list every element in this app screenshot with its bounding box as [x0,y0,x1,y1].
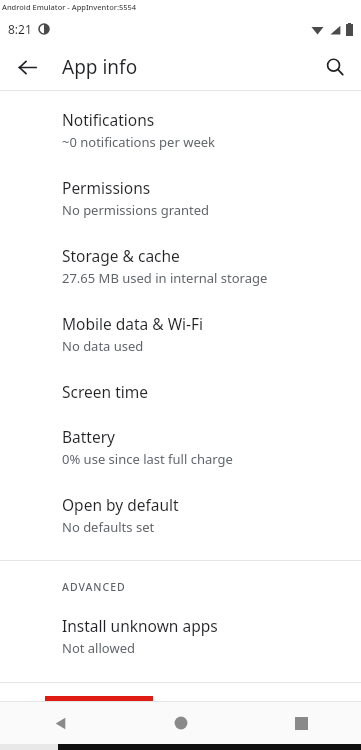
staticText: Android Emulator - AppInventor:5554 [2,2,137,12]
staticText: Install unknown apps [62,615,218,636]
button[interactable]: Notifications [0,91,361,151]
staticText: Storage & cache [62,245,180,266]
staticText: No data used [62,337,144,355]
button[interactable]: Screen time [0,355,361,402]
button[interactable]: Open by default [0,468,361,536]
button[interactable]: Back [10,50,44,84]
staticText: No permissions granted [62,201,210,219]
staticText: Screen time [62,381,148,402]
button[interactable]: Permissions [0,151,361,219]
staticText: ADVANCED [62,580,126,594]
staticText: App info [62,54,138,80]
staticText: No defaults set [62,518,155,536]
button[interactable]: Back [0,702,121,744]
staticText: Battery [62,426,116,447]
staticText: Permissions [62,177,151,198]
staticText: 0% use since last full charge [62,450,233,468]
button[interactable]: Install unknown apps [0,594,361,657]
button[interactable]: Search [317,49,353,85]
button[interactable]: Storage & cache [0,219,361,287]
button[interactable]: Home [121,702,241,744]
staticText: 8:21 [8,21,32,37]
staticText: Open by default [62,494,179,515]
button[interactable]: Battery [0,402,361,468]
staticText: ~0 notifications per week [62,133,216,151]
staticText: Mobile data & Wi-Fi [62,313,204,334]
button[interactable]: Recent apps [241,702,361,744]
button[interactable]: Mobile data & Wi-Fi [0,287,361,355]
staticText: 27.65 MB used in internal storage [62,269,268,287]
staticText: Not allowed [62,639,135,657]
staticText: Notifications [62,109,155,130]
